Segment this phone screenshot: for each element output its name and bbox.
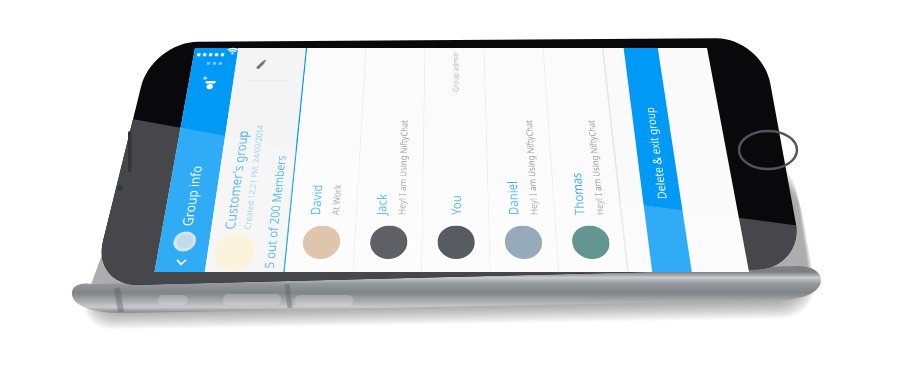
- button[interactable]: David: [0, 171, 375, 261]
- button[interactable]: Add member: [283, 0, 335, 66]
- staticText: Created 12:21 PM, 24/09/2014: [63, 106, 233, 122]
- staticText: David: [85, 192, 134, 217]
- staticText: 5 out of 200 Members: [5, 138, 181, 161]
- button[interactable]: Jack: [0, 261, 375, 351]
- staticText: Jack: [85, 282, 119, 307]
- staticText: At Work: [85, 223, 134, 241]
- staticText: Customer's group: [63, 78, 224, 104]
- staticText: Hey! I am Using NiftyChat: [85, 313, 242, 331]
